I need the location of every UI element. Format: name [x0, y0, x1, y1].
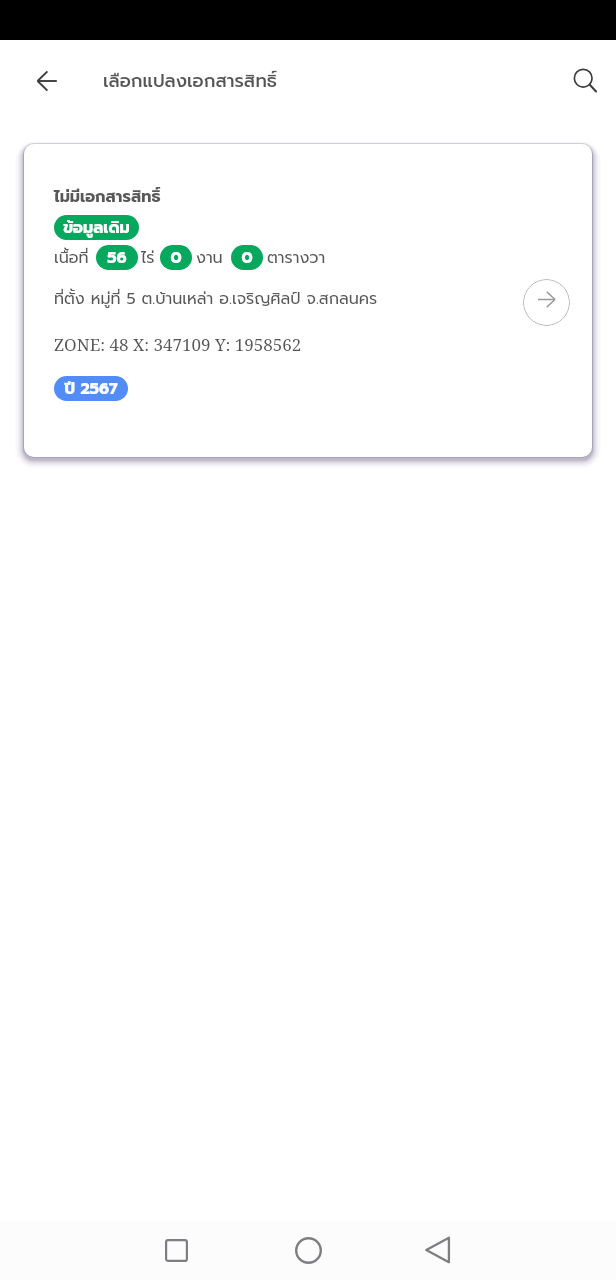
button[interactable]: Back	[23, 57, 71, 105]
staticText: 0	[170, 246, 182, 270]
button[interactable]: Recent apps	[152, 1226, 200, 1274]
staticText: ข้อมูลเดิม	[63, 216, 130, 240]
button[interactable]: Search	[561, 56, 609, 104]
staticText: งาน	[196, 246, 223, 270]
staticText: ปี 2567	[64, 377, 118, 401]
staticText: เนื้อที่	[54, 246, 89, 270]
button[interactable]: Home	[284, 1226, 332, 1274]
button[interactable]: ไม่มีเอกสารสิทธิ์	[24, 144, 592, 457]
button[interactable]: Open	[523, 279, 570, 326]
staticText: เลือกแปลงเอกสารสิทธิ์	[103, 67, 278, 94]
staticText: ที่ตั้ง หมู่ที่ 5 ต.บ้านเหล่า อ.เจริญศิล…	[54, 287, 378, 311]
button[interactable]: Back	[414, 1226, 462, 1274]
staticText: ไม่มีเอกสารสิทธิ์	[54, 185, 161, 209]
staticText: ไร่	[141, 246, 155, 270]
staticText: ตารางวา	[267, 246, 326, 270]
staticText: ZONE: 48 X: 347109 Y: 1958562	[54, 333, 302, 356]
staticText: 56	[107, 246, 127, 270]
staticText: 0	[241, 246, 253, 270]
